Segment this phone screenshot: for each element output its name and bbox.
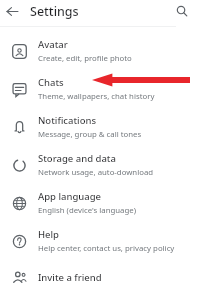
staticText: Storage and data: [38, 152, 116, 165]
button[interactable]: Storage and data: [0, 146, 200, 184]
staticText: Help center, contact us, privacy policy: [38, 243, 175, 254]
staticText: App language: [38, 190, 102, 203]
button[interactable]: Chats: [0, 70, 200, 108]
staticText: Settings: [30, 3, 79, 20]
staticText: Message, group & call tones: [38, 129, 142, 140]
button[interactable]: Avatar: [0, 32, 200, 70]
button[interactable]: Invite a friend: [0, 260, 200, 294]
staticText: Chats: [38, 76, 64, 89]
staticText: Avatar: [38, 38, 68, 51]
staticText: Create, edit, profile photo: [38, 53, 132, 64]
staticText: Help: [38, 228, 60, 241]
staticText: Notifications: [38, 114, 97, 127]
staticText: Network usage, auto-download: [38, 167, 154, 178]
button[interactable]: Back: [2, 1, 22, 21]
button[interactable]: Search: [172, 1, 192, 21]
button[interactable]: App language: [0, 184, 200, 222]
staticText: Invite a friend: [38, 271, 102, 284]
staticText: Theme, wallpapers, chat history: [38, 91, 155, 102]
button[interactable]: Notifications: [0, 108, 200, 146]
staticText: English (device's language): [38, 205, 136, 216]
button[interactable]: Help: [0, 222, 200, 260]
